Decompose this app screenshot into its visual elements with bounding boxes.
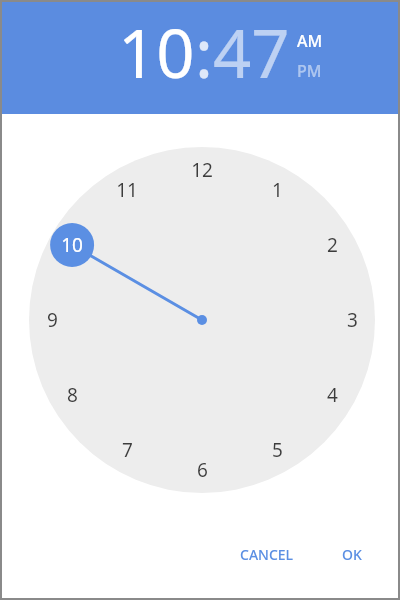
button[interactable]: 47 xyxy=(213,6,290,97)
button[interactable]: 12 xyxy=(180,148,224,192)
staticText: 6 xyxy=(197,457,208,483)
staticText: 7 xyxy=(122,437,133,463)
button[interactable]: OK xyxy=(332,537,372,572)
button[interactable]: 6 xyxy=(180,448,224,492)
button[interactable]: CANCEL xyxy=(230,537,304,572)
staticText: 5 xyxy=(272,437,283,463)
staticText: 12 xyxy=(191,157,213,183)
staticText: 11 xyxy=(116,177,138,203)
button[interactable]: Clock dial, 10 o'clock selected xyxy=(29,147,375,493)
staticText: 10 xyxy=(61,232,83,258)
staticText: CANCEL xyxy=(240,545,294,564)
button[interactable]: 2 xyxy=(310,223,354,267)
button[interactable]: 1 xyxy=(255,168,299,212)
staticText: 4 xyxy=(327,382,338,408)
button[interactable]: 8 xyxy=(50,373,94,417)
staticText: 8 xyxy=(67,382,78,408)
staticText: : xyxy=(195,6,213,97)
staticText: 9 xyxy=(47,307,58,333)
button[interactable]: 9 xyxy=(30,298,74,342)
button[interactable]: PM xyxy=(297,60,322,82)
button[interactable]: 10 xyxy=(118,6,195,97)
button[interactable]: 3 xyxy=(330,298,374,342)
staticText: 2 xyxy=(327,232,338,258)
button[interactable]: AM xyxy=(297,30,323,52)
button[interactable]: 11 xyxy=(105,168,149,212)
button[interactable]: 4 xyxy=(310,373,354,417)
button[interactable]: 7 xyxy=(105,428,149,472)
staticText: 1 xyxy=(272,177,283,203)
button[interactable]: 5 xyxy=(255,428,299,472)
staticText: 3 xyxy=(347,307,358,333)
staticText: OK xyxy=(342,545,362,564)
button[interactable]: 10 xyxy=(50,223,94,267)
